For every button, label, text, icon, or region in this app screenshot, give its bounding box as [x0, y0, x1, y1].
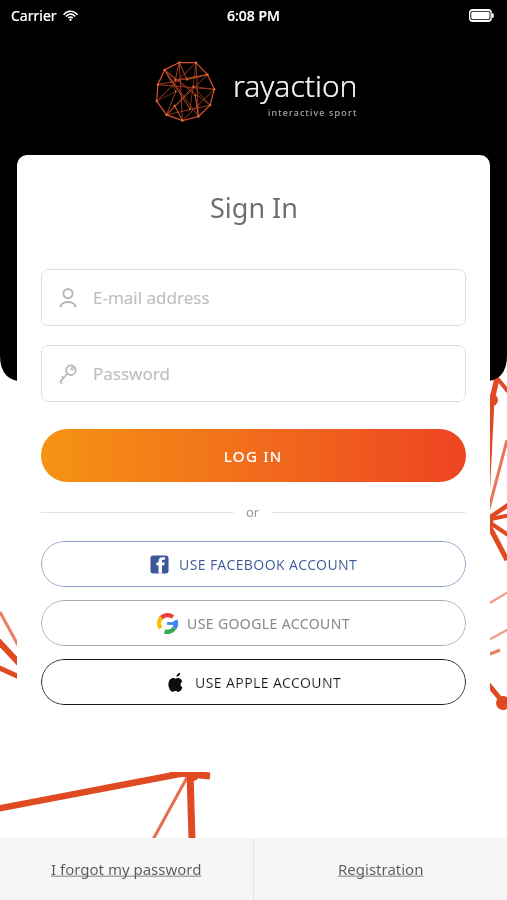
staticText: E-mail address — [93, 286, 210, 309]
staticText: 6:08 PM — [227, 6, 280, 25]
staticText: USE FACEBOOK ACCOUNT — [179, 555, 358, 574]
staticText: or — [246, 503, 260, 521]
staticText: Password — [93, 362, 170, 385]
button[interactable]: LOG IN — [41, 429, 466, 482]
staticText: I forgot my password — [51, 859, 202, 879]
button[interactable]: USE GOOGLE ACCOUNT — [41, 600, 466, 646]
button[interactable]: Password — [41, 345, 466, 402]
staticText: USE APPLE ACCOUNT — [195, 673, 342, 692]
staticText: LOG IN — [224, 446, 283, 466]
button[interactable]: USE FACEBOOK ACCOUNT — [41, 541, 466, 587]
button[interactable]: E-mail address — [41, 269, 466, 326]
staticText: rayaction — [233, 65, 358, 106]
button[interactable]: Registration — [254, 838, 507, 900]
staticText: Carrier — [11, 6, 57, 25]
staticText: USE GOOGLE ACCOUNT — [187, 614, 350, 633]
button[interactable]: USE APPLE ACCOUNT — [41, 659, 466, 705]
staticText: Registration — [338, 859, 424, 879]
button[interactable]: I forgot my password — [0, 838, 253, 900]
staticText: Sign In — [210, 189, 298, 226]
staticText: interactive sport — [268, 106, 358, 118]
